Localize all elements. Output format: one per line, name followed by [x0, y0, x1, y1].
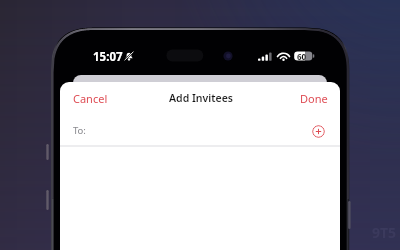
staticText: 15:07	[93, 49, 123, 65]
staticText: 9T5	[372, 223, 397, 242]
staticText: To:	[73, 124, 86, 137]
other: Silent mode	[124, 51, 134, 61]
button[interactable]: Done	[300, 91, 328, 106]
button[interactable]: Add contact	[312, 125, 325, 138]
staticText: Add Invitees	[169, 91, 233, 105]
button[interactable]: Cancel	[73, 91, 108, 106]
staticText: 60	[297, 51, 307, 62]
